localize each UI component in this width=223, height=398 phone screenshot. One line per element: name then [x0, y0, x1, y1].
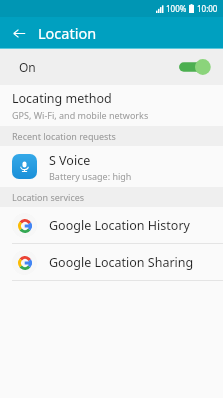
staticText: Recent location requests: [12, 130, 116, 142]
staticText: Location: [38, 23, 97, 43]
button[interactable]: S Voice: [0, 146, 223, 187]
staticText: 10:00: [197, 3, 218, 14]
staticText: Location services: [12, 191, 85, 203]
button[interactable]: Google Location Sharing: [0, 244, 223, 280]
button[interactable]: Navigate up: [6, 20, 32, 46]
staticText: 100%: [166, 3, 187, 14]
other: Location on: [177, 58, 211, 76]
staticText: Locating method: [12, 90, 112, 107]
staticText: On: [19, 59, 36, 75]
staticText: GPS, Wi-Fi, and mobile networks: [12, 109, 149, 121]
staticText: S Voice: [49, 152, 91, 169]
staticText: Google Location Sharing: [49, 254, 194, 271]
staticText: Google Location History: [49, 217, 190, 234]
button[interactable]: Google Location History: [0, 207, 223, 243]
button[interactable]: Locating method: [0, 85, 223, 126]
staticText: Battery usage: high: [49, 170, 132, 182]
button[interactable]: On: [0, 49, 223, 85]
